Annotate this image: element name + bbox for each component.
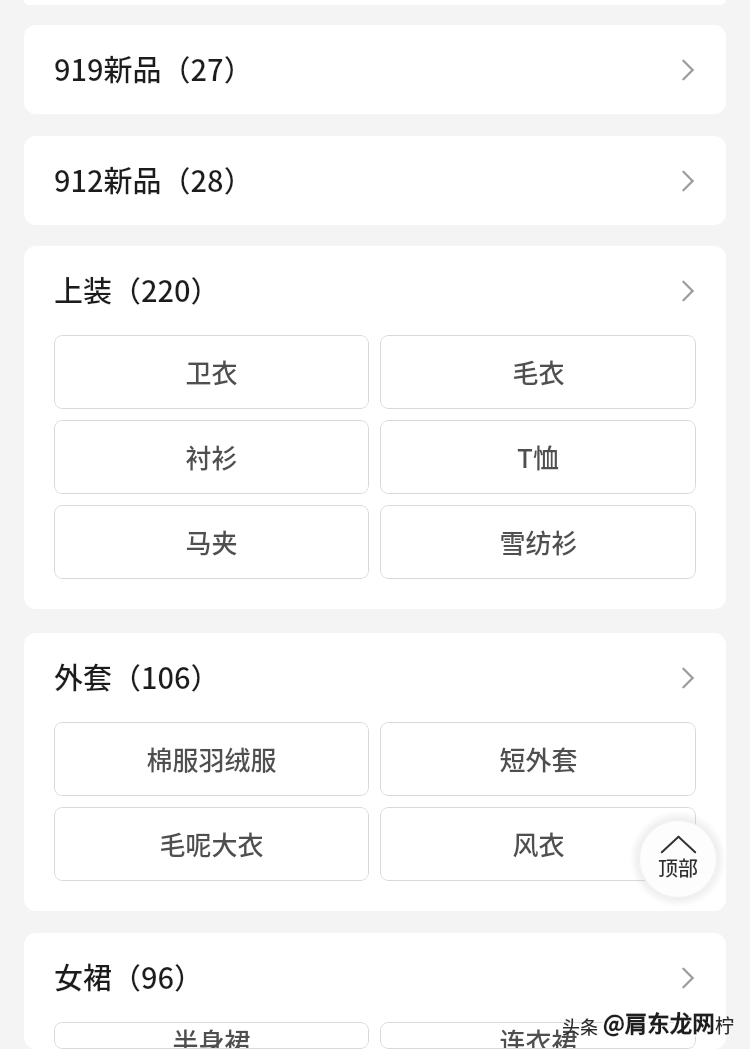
staticText: 912新品（28） [54,158,253,200]
staticText: 半身裙 [172,1022,251,1049]
button[interactable]: 卫衣 [54,335,369,409]
button[interactable]: 外套（106） [24,633,726,722]
staticText: 棉服羽绒服 [146,740,277,778]
staticText: 外套（106） [54,655,220,697]
button[interactable]: 衬衫 [54,420,369,494]
button[interactable]: 雪纺衫 [380,505,696,579]
staticText: 风衣 [512,825,565,863]
staticText: 毛衣 [512,353,565,391]
button[interactable]: 返回顶部 [639,820,717,898]
staticText: 上装（220） [54,268,220,310]
staticText: 头条 [562,1013,603,1039]
button[interactable]: 短外套 [380,722,696,796]
staticText: T恤 [517,438,559,476]
button[interactable]: 912新品（28） [24,136,726,225]
staticText: 卫衣 [185,353,238,391]
staticText: @肩东龙网 [603,1006,715,1039]
staticText: 毛呢大衣 [159,825,264,863]
button[interactable]: 上装（220） [24,246,726,335]
button[interactable]: 风衣 [380,807,696,881]
button[interactable]: 棉服羽绒服 [54,722,369,796]
button[interactable]: 连衣裙 [380,1022,696,1049]
staticText: 短外套 [499,740,578,778]
button[interactable]: 女裙（96） [24,933,726,1022]
button[interactable]: T恤 [380,420,696,494]
staticText: 女裙（96） [54,955,204,997]
staticText: 雪纺衫 [499,523,578,561]
staticText: 连衣裙 [499,1022,578,1049]
staticText: 衬衫 [185,438,238,476]
button[interactable]: 919新品（27） [24,25,726,114]
button[interactable]: 毛衣 [380,335,696,409]
button[interactable]: 毛呢大衣 [54,807,369,881]
button[interactable]: 马夹 [54,505,369,579]
button[interactable]: 半身裙 [54,1022,369,1049]
staticText: 马夹 [185,523,238,561]
staticText: 919新品（27） [54,47,253,89]
staticText: 顶部 [658,853,698,882]
staticText: 柠 [715,1011,735,1039]
staticText: @肩东龙网 [603,1006,715,1039]
